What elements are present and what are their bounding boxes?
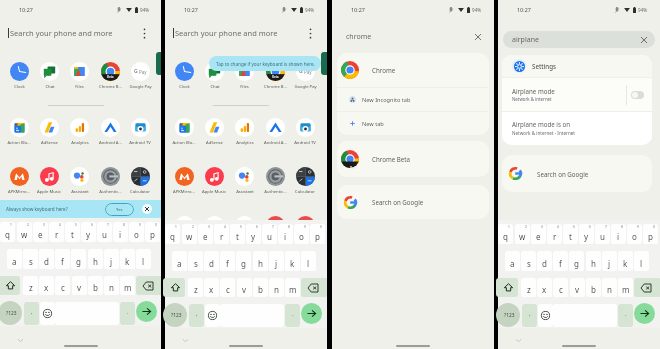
button[interactable]: Airplane mode toggle bbox=[631, 91, 644, 99]
button[interactable]: 7 bbox=[97, 222, 112, 242]
button[interactable]: h bbox=[88, 249, 103, 269]
button[interactable]: Android A... bbox=[260, 118, 290, 146]
button[interactable]: 9 bbox=[294, 224, 309, 244]
button[interactable]: Clear search bbox=[637, 33, 650, 46]
button[interactable]: b bbox=[253, 278, 268, 297]
button[interactable]: Airplane mode bbox=[502, 78, 652, 111]
button[interactable]: d bbox=[204, 251, 219, 271]
button[interactable]: chrome bbox=[337, 28, 489, 45]
button[interactable]: l bbox=[136, 249, 151, 269]
button[interactable]: h bbox=[586, 251, 601, 271]
button[interactable]: j bbox=[269, 251, 284, 271]
button[interactable]: Chrome bbox=[337, 53, 489, 87]
button[interactable]: 7 bbox=[595, 224, 610, 244]
button[interactable]: Android TV bbox=[125, 118, 155, 146]
button[interactable]: G bbox=[290, 62, 320, 90]
button[interactable]: 8 bbox=[113, 222, 128, 242]
button[interactable]: 1 bbox=[498, 224, 513, 244]
button[interactable]: , bbox=[189, 304, 204, 327]
button[interactable]: 7 bbox=[262, 224, 277, 244]
button[interactable]: Files bbox=[64, 62, 94, 90]
button[interactable]: Backspace bbox=[301, 278, 328, 297]
button[interactable]: z bbox=[188, 278, 203, 297]
button[interactable]: x bbox=[39, 276, 54, 295]
button[interactable]: n bbox=[269, 278, 284, 297]
button[interactable]: Search your phone and more bbox=[165, 22, 327, 44]
button[interactable] bbox=[169, 216, 199, 244]
button[interactable]: More options bbox=[135, 24, 153, 42]
button[interactable]: 1 bbox=[165, 224, 180, 244]
button[interactable]: Search bbox=[136, 301, 157, 322]
button[interactable]: j bbox=[104, 249, 119, 269]
button[interactable]: 8 bbox=[278, 224, 293, 244]
button[interactable]: . bbox=[618, 304, 633, 327]
button[interactable]: Clock bbox=[169, 62, 199, 90]
button[interactable]: f bbox=[553, 251, 568, 271]
button[interactable]: Calculator bbox=[290, 167, 320, 195]
button[interactable]: f bbox=[220, 251, 235, 271]
button[interactable]: n bbox=[602, 278, 617, 297]
button[interactable]: Calculator bbox=[125, 167, 155, 195]
button[interactable]: b bbox=[88, 276, 103, 295]
button[interactable]: s bbox=[23, 249, 38, 269]
button[interactable]: Symbols bbox=[496, 303, 520, 327]
button[interactable]: Airplane mode is on bbox=[502, 112, 652, 145]
button[interactable]: Authentic... bbox=[95, 167, 125, 195]
button[interactable]: Emoji bbox=[538, 304, 553, 327]
button[interactable]: k bbox=[618, 251, 633, 271]
button[interactable]: 4 bbox=[49, 222, 64, 242]
button[interactable]: Android TV bbox=[290, 118, 320, 146]
button[interactable]: , bbox=[522, 304, 537, 327]
button[interactable]: . bbox=[120, 302, 135, 325]
button[interactable]: a bbox=[7, 249, 22, 269]
button[interactable]: Search on Google bbox=[337, 185, 489, 219]
button[interactable]: z bbox=[521, 278, 536, 297]
button[interactable]: Beta bbox=[260, 62, 290, 90]
button[interactable]: 5 bbox=[563, 224, 578, 244]
button[interactable]: a bbox=[505, 251, 520, 271]
button[interactable]: APKMirro... bbox=[169, 167, 199, 195]
button[interactable]: 1 bbox=[0, 222, 15, 242]
button[interactable]: Emoji bbox=[205, 304, 220, 327]
button[interactable]: 2 bbox=[182, 224, 197, 244]
button[interactable]: k bbox=[285, 251, 300, 271]
button[interactable]: Panel handle bbox=[321, 52, 327, 75]
button[interactable]: 0 bbox=[145, 222, 160, 242]
button[interactable]: d bbox=[537, 251, 552, 271]
button[interactable]: g bbox=[569, 251, 584, 271]
button[interactable]: l bbox=[301, 251, 316, 271]
button[interactable]: 3 bbox=[198, 224, 213, 244]
button[interactable]: x bbox=[204, 278, 219, 297]
button[interactable]: k bbox=[120, 249, 135, 269]
button[interactable] bbox=[199, 216, 229, 244]
button[interactable]: . bbox=[285, 304, 300, 327]
button[interactable]: m bbox=[618, 278, 633, 297]
button[interactable]: New tab bbox=[337, 112, 489, 135]
button[interactable]: 6 bbox=[81, 222, 96, 242]
button[interactable]: l bbox=[634, 251, 649, 271]
button[interactable]: c bbox=[220, 278, 235, 297]
button[interactable]: Apple Music bbox=[34, 167, 64, 195]
button[interactable]: v bbox=[570, 278, 585, 297]
button[interactable]: More options bbox=[301, 24, 319, 42]
button[interactable]: Android A... bbox=[95, 118, 125, 146]
button[interactable]: Action Blo... bbox=[169, 118, 199, 146]
button[interactable]: v bbox=[237, 278, 252, 297]
button[interactable]: 3 bbox=[33, 222, 48, 242]
button[interactable]: s bbox=[521, 251, 536, 271]
button[interactable]: Emoji bbox=[40, 302, 55, 325]
button[interactable]: Action Blo... bbox=[4, 118, 34, 146]
button[interactable]: Search your phone and more bbox=[0, 22, 161, 44]
button[interactable]: 2 bbox=[17, 222, 32, 242]
button[interactable]: Yes bbox=[105, 203, 134, 216]
button[interactable]: Assistant bbox=[64, 167, 94, 195]
button[interactable]: d bbox=[39, 249, 54, 269]
button[interactable]: Settings bbox=[502, 55, 652, 77]
button[interactable]: Symbols bbox=[0, 301, 22, 325]
button[interactable]: Search on Google bbox=[502, 155, 652, 192]
button[interactable]: Chat bbox=[34, 62, 64, 90]
button[interactable]: Symbols bbox=[163, 303, 187, 327]
button[interactable]: Backspace bbox=[634, 278, 660, 297]
